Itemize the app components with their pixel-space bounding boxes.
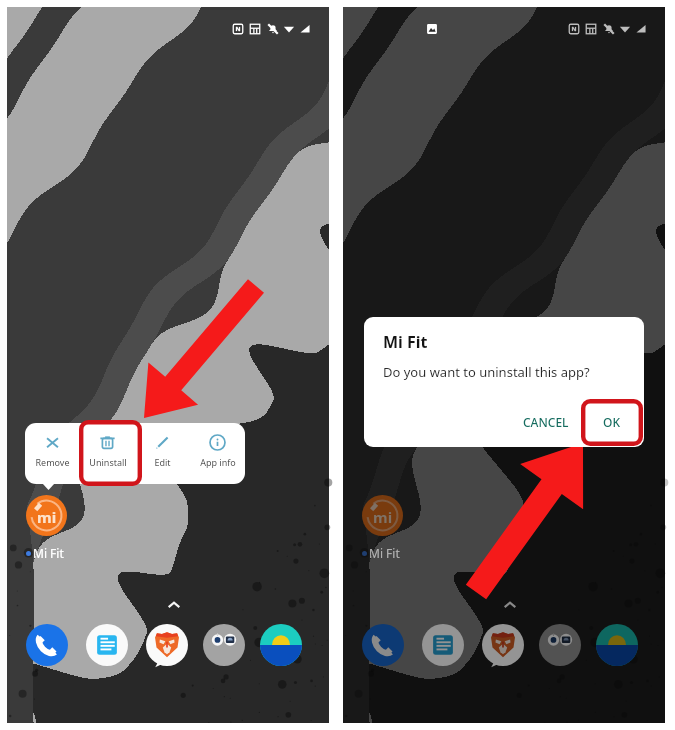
staticText: Mi Fit	[369, 545, 400, 561]
button[interactable]: Weather	[260, 624, 302, 666]
button[interactable]: Mi Fit	[362, 495, 403, 536]
button[interactable]: Brave Browser	[146, 624, 188, 666]
button[interactable]: Camera	[539, 624, 581, 666]
button[interactable]: Brave Browser	[482, 624, 524, 666]
button[interactable]: Weather	[596, 624, 638, 666]
staticText: mi	[37, 507, 57, 527]
staticText: OK	[603, 414, 620, 430]
button[interactable]: Camera	[203, 624, 245, 666]
staticText: CANCEL	[523, 414, 569, 430]
button[interactable]: Phone	[26, 624, 68, 666]
button[interactable]: Uninstall	[80, 423, 135, 484]
button[interactable]: OK	[588, 407, 635, 437]
button[interactable]: Edit	[135, 423, 190, 484]
button[interactable]: Mi Fit	[26, 495, 67, 536]
button[interactable]: Phone	[362, 624, 404, 666]
staticText: App info	[200, 456, 236, 468]
staticText: mi	[373, 507, 393, 527]
staticText: Mi Fit	[33, 545, 64, 561]
button[interactable]: Mi Fit	[362, 545, 400, 561]
staticText: Uninstall	[89, 456, 127, 468]
staticText: Mi Fit	[383, 331, 428, 353]
button[interactable]: Mi Fit	[26, 545, 64, 561]
staticText: Edit	[154, 456, 171, 468]
button[interactable]: CANCEL	[514, 407, 578, 437]
button[interactable]: Remove	[25, 423, 80, 484]
staticText: Remove	[35, 456, 70, 468]
button[interactable]: Notes	[422, 624, 464, 666]
button[interactable]: Notes	[86, 624, 128, 666]
staticText: Do you want to uninstall this app?	[383, 363, 590, 381]
button[interactable]: App info	[190, 423, 245, 484]
